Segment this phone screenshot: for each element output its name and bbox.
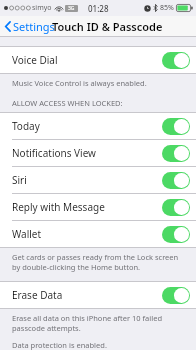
button[interactable]: On xyxy=(162,226,190,243)
staticText: 3G xyxy=(68,5,75,12)
staticText: Music Voice Control is always enabled. xyxy=(12,78,186,88)
button[interactable]: On xyxy=(162,172,190,189)
staticText: Notifications View xyxy=(12,146,162,160)
staticText: Settings xyxy=(13,19,55,34)
button[interactable]: Notifications View xyxy=(0,140,196,166)
button[interactable]: Settings xyxy=(3,17,57,36)
staticText: 01:28 xyxy=(88,3,109,14)
staticText: Voice Dial xyxy=(12,53,162,67)
button[interactable]: On xyxy=(162,287,190,304)
button[interactable]: Reply with Message xyxy=(0,194,196,220)
button[interactable]: On xyxy=(162,145,190,162)
staticText: Erase Data xyxy=(12,288,162,302)
staticText: Data protection is enabled. xyxy=(12,340,186,350)
staticText: simyo xyxy=(32,3,52,13)
button[interactable]: Wallet xyxy=(0,221,196,247)
button[interactable]: On xyxy=(162,118,190,135)
button[interactable]: Siri xyxy=(0,167,196,193)
staticText: Erase all data on this iPhone after 10 f… xyxy=(12,313,186,333)
button[interactable]: On xyxy=(162,52,190,69)
button[interactable]: Erase Data xyxy=(0,282,196,308)
button[interactable]: On xyxy=(162,199,190,216)
staticText: Reply with Message xyxy=(12,200,162,214)
staticText: Get cards or passes ready from the Lock … xyxy=(12,252,186,272)
staticText: Siri xyxy=(12,173,162,187)
staticText: ALLOW ACCESS WHEN LOCKED: xyxy=(12,98,123,108)
staticText: Touch ID & Passcode xyxy=(52,19,163,34)
button[interactable]: Voice Dial xyxy=(0,47,196,73)
staticText: Wallet xyxy=(12,227,162,241)
staticText: Today xyxy=(12,119,162,133)
staticText: 85% xyxy=(160,3,174,13)
button[interactable]: Today xyxy=(0,113,196,139)
